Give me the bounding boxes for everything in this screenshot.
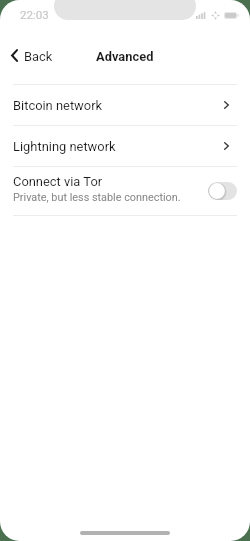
staticText: Connect via Tor <box>13 174 103 189</box>
staticText: Bitcoin network <box>13 98 103 113</box>
staticText: Lightning network <box>13 139 116 154</box>
button[interactable]: Bitcoin network <box>0 85 250 125</box>
staticText: Back <box>24 49 53 64</box>
staticText: 22:03 <box>20 8 49 22</box>
staticText: Private, but less stable connection. <box>13 191 181 204</box>
staticText: Advanced <box>96 49 154 64</box>
button[interactable]: Lightning network <box>0 126 250 166</box>
button[interactable]: Connect via Tor <box>0 167 250 215</box>
button[interactable]: Connect via Tor, off <box>208 182 237 200</box>
button[interactable]: Back <box>0 46 61 67</box>
